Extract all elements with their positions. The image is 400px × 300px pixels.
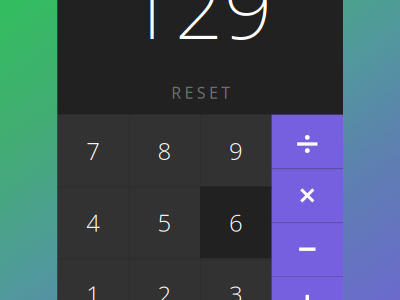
staticText: R [171,82,181,103]
button[interactable]: 5 [129,186,200,258]
button[interactable]: Divide [272,115,343,168]
staticText: 2 [158,278,172,300]
button[interactable]: 6 [200,186,272,258]
staticText: E [184,82,193,103]
staticText: 5 [158,206,172,238]
button[interactable]: 4 [57,186,129,258]
staticText: E [209,82,218,103]
button[interactable]: 9 [200,115,272,186]
button[interactable]: Subtract [272,222,343,276]
staticText: 4 [86,206,100,238]
button[interactable]: Reset [141,79,261,105]
staticText: 1 [86,278,100,300]
button[interactable]: 1 [57,258,129,300]
staticText: 129 [126,0,273,63]
staticText: S [197,82,206,103]
staticText: 3 [229,278,243,300]
button[interactable]: 7 [57,115,129,186]
staticText: T [221,82,230,103]
button[interactable]: Add [272,276,343,300]
staticText: 7 [86,135,100,167]
button[interactable]: Multiply [272,168,343,222]
button[interactable]: 2 [129,258,200,300]
staticText: 8 [158,135,172,167]
button[interactable]: 3 [200,258,272,300]
button[interactable]: 8 [129,115,200,186]
staticText: 6 [229,206,243,238]
staticText: 9 [229,135,243,167]
